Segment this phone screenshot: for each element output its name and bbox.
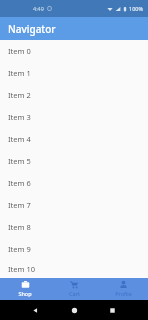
staticText: 4:49 xyxy=(33,5,44,12)
staticText: Item 7 xyxy=(8,200,31,210)
button[interactable]: Home xyxy=(71,307,78,314)
button[interactable]: Item 1 xyxy=(0,62,148,84)
button[interactable]: Item 6 xyxy=(0,172,148,194)
button[interactable]: Item 10 xyxy=(0,260,148,278)
button[interactable]: Item 5 xyxy=(0,150,148,172)
staticText: Item 1 xyxy=(8,68,31,78)
other: Cart xyxy=(70,280,79,289)
button[interactable]: Shop xyxy=(0,278,50,300)
staticText: Shop xyxy=(18,290,32,297)
button[interactable]: Cart xyxy=(50,278,99,300)
button[interactable]: Item 0 xyxy=(0,40,148,62)
button[interactable]: Recents xyxy=(109,307,116,314)
button[interactable]: Profile xyxy=(99,278,148,300)
staticText: Item 0 xyxy=(8,46,31,56)
button[interactable]: Item 3 xyxy=(0,106,148,128)
button[interactable]: Back xyxy=(32,307,39,314)
button[interactable]: Item 4 xyxy=(0,128,148,150)
button[interactable]: Item 9 xyxy=(0,238,148,260)
staticText: Item 3 xyxy=(8,112,31,122)
button[interactable]: Item 7 xyxy=(0,194,148,216)
other: Profile xyxy=(119,280,128,289)
button[interactable]: Item 2 xyxy=(0,84,148,106)
staticText: Item 9 xyxy=(8,244,31,254)
staticText: 100% xyxy=(129,5,144,12)
staticText: Item 5 xyxy=(8,156,31,166)
staticText: Profile xyxy=(115,290,132,297)
staticText: Item 2 xyxy=(8,90,31,100)
staticText: Cart xyxy=(69,290,80,297)
staticText: Item 4 xyxy=(8,134,31,144)
staticText: Item 6 xyxy=(8,178,31,188)
staticText: Item 10 xyxy=(8,264,36,274)
button[interactable]: Item 8 xyxy=(0,216,148,238)
staticText: Navigator xyxy=(8,22,56,36)
other: Shop xyxy=(21,280,30,289)
staticText: Item 8 xyxy=(8,222,31,232)
